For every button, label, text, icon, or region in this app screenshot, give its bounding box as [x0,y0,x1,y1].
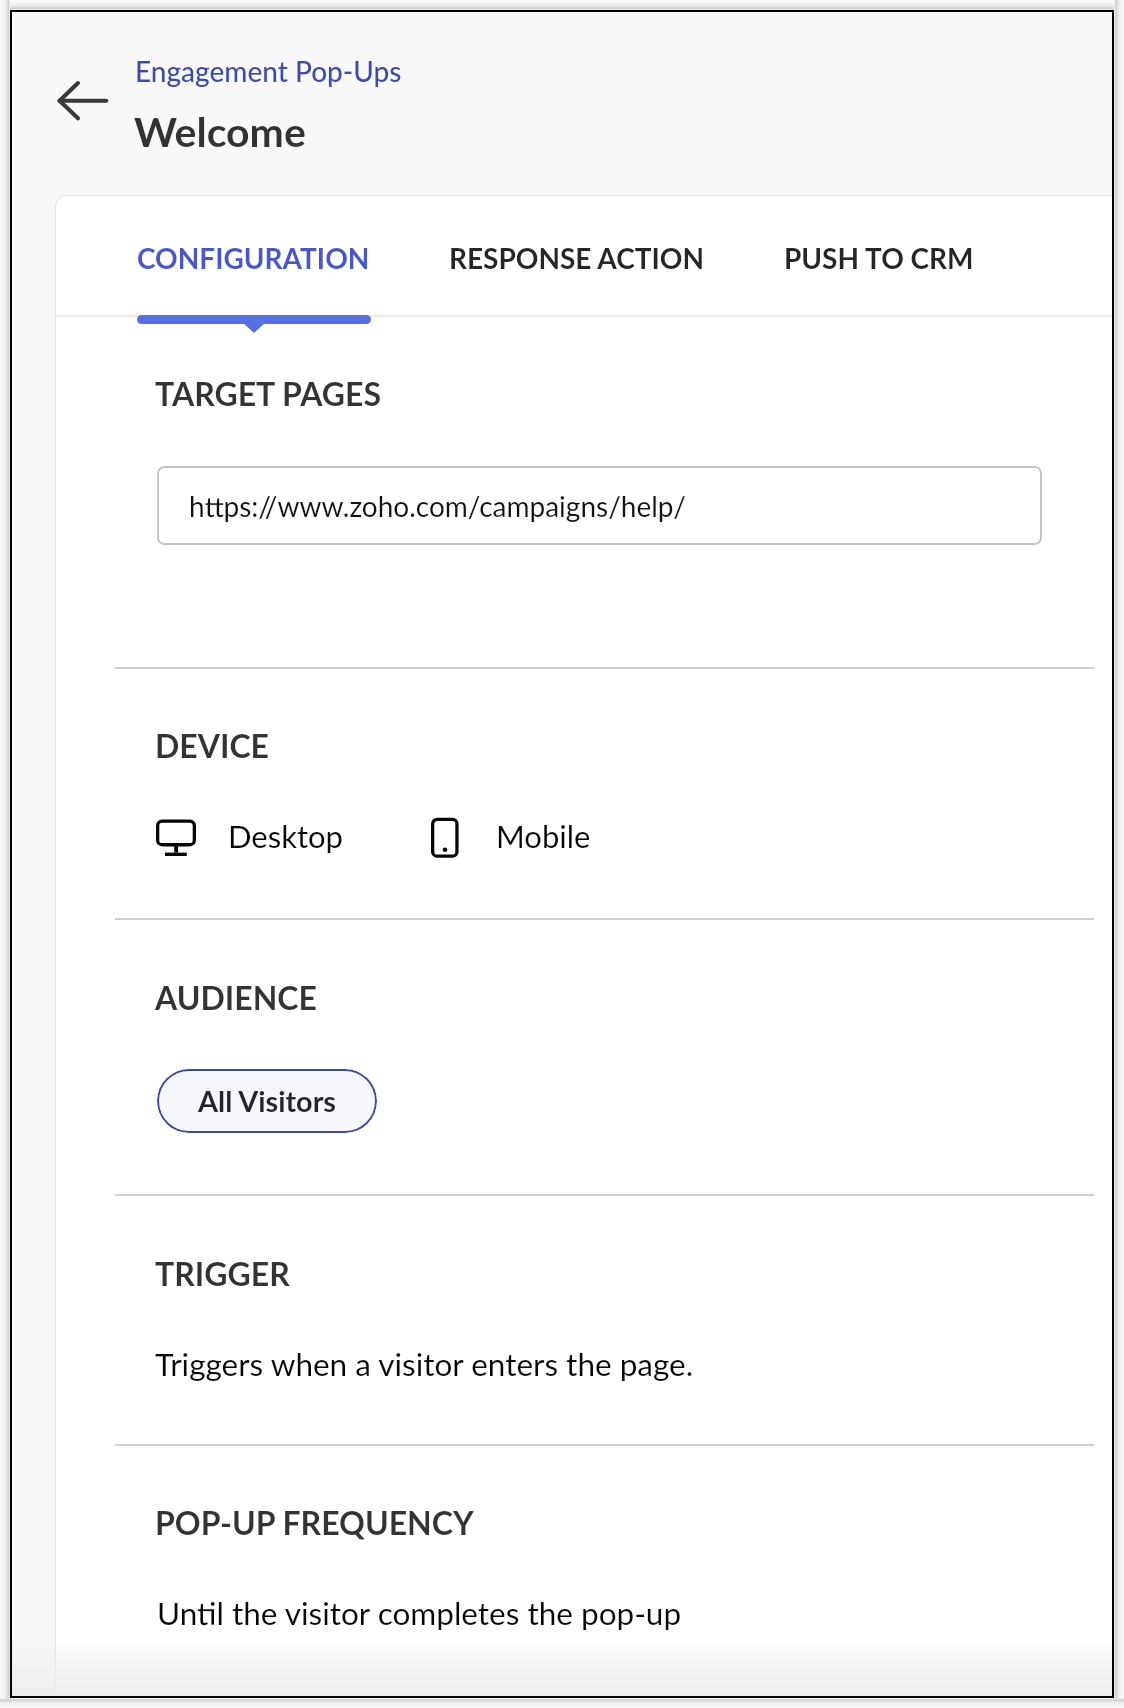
staticText: https://www.zoho.com/campaigns/help/ [189,489,686,523]
staticText: Until the visitor completes the pop-up [157,1594,682,1632]
staticText: RESPONSE ACTION [449,241,704,275]
button[interactable]: Desktop [148,806,353,868]
button[interactable]: Mobile [424,806,604,868]
staticText: TRIGGER [155,1254,290,1292]
staticText: Welcome [134,107,306,156]
button[interactable]: All Visitors [157,1069,377,1133]
staticText: All Visitors [198,1084,336,1119]
button[interactable]: Back [42,64,126,138]
button[interactable]: https://www.zoho.com/campaigns/help/ [157,466,1042,545]
staticText: TARGET PAGES [155,374,381,412]
button[interactable]: PUSH TO CRM [770,233,983,315]
staticText: Desktop [228,817,343,854]
staticText: Triggers when a visitor enters the page. [155,1345,694,1383]
staticText: AUDIENCE [155,978,317,1016]
button[interactable]: CONFIGURATION [123,233,383,315]
staticText: PUSH TO CRM [784,241,974,275]
staticText: Mobile [496,817,591,854]
staticText: DEVICE [155,726,270,764]
button[interactable]: RESPONSE ACTION [435,233,715,315]
staticText: CONFIGURATION [137,241,370,275]
staticText: POP-UP FREQUENCY [155,1503,474,1541]
staticText: Engagement Pop-Ups [135,54,402,88]
